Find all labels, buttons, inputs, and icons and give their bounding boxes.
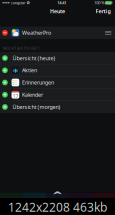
button[interactable]: WeatherPro [0,27,115,39]
staticText: Kalender [22,91,43,98]
button[interactable]: 17 [0,89,115,101]
staticText: Übersicht (heute) [12,54,55,62]
staticText: congstar [11,0,26,5]
staticText: 14:41 [57,0,66,5]
button[interactable]: Aktien [0,64,115,76]
button[interactable]: Erinnerungen [0,76,115,89]
button[interactable]: Übersicht (morgen) [0,101,115,113]
button[interactable]: Fertig [91,6,115,18]
staticText: Erinnerungen [22,79,54,86]
staticText: 17 [12,92,18,99]
staticText: 100 % [94,0,104,5]
staticText: Fertig [96,8,111,15]
staticText: Aktien [22,67,37,74]
staticText: N I C H T A K T I V I E R T [4,47,39,50]
staticText: Übersicht (morgen) [12,103,60,110]
staticText: Heute [50,8,65,15]
button[interactable]: Übersicht (heute) [0,52,115,64]
staticText: WeatherPro [22,29,51,36]
staticText: 1242x2208 463kb [8,199,107,215]
